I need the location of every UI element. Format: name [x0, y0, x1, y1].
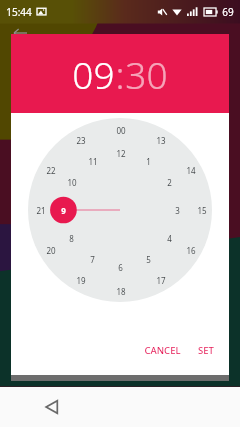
button[interactable]: 00	[112, 122, 129, 139]
staticText: SET	[198, 344, 214, 357]
staticText: 7	[90, 254, 95, 265]
button[interactable]: 09	[72, 49, 115, 99]
button[interactable]: 12	[112, 145, 129, 162]
button[interactable]: SET	[193, 341, 219, 360]
staticText: :	[115, 49, 125, 99]
staticText: 15:44	[6, 5, 32, 19]
staticText: 2	[167, 177, 172, 188]
button[interactable]: 7	[84, 251, 101, 268]
button[interactable]: 11	[84, 153, 101, 170]
button[interactable]: 22	[42, 162, 59, 179]
button[interactable]: 8	[63, 230, 80, 247]
staticText: 20	[46, 245, 56, 256]
button[interactable]: 14	[182, 162, 199, 179]
staticText: 9	[61, 205, 66, 216]
staticText: 21	[36, 205, 46, 216]
button[interactable]: 15	[193, 202, 210, 219]
staticText: 5	[146, 254, 151, 265]
button[interactable]: 6	[112, 259, 129, 276]
button[interactable]: CANCEL	[139, 341, 186, 360]
button[interactable]: 23	[72, 132, 89, 149]
staticText: 3	[175, 205, 180, 216]
button[interactable]: 18	[112, 283, 129, 300]
button[interactable]: 1	[140, 153, 157, 170]
staticText: 16	[186, 245, 196, 256]
staticText: 22	[46, 165, 56, 176]
staticText: 11	[88, 156, 98, 167]
staticText: 23	[76, 135, 86, 146]
button[interactable]: 10	[63, 174, 80, 191]
staticText: 17	[156, 275, 166, 286]
button[interactable]: 2	[161, 174, 178, 191]
button[interactable]: 17	[152, 272, 169, 289]
button[interactable]: Clock dial	[28, 118, 212, 302]
staticText: 1	[146, 156, 151, 167]
staticText: 15	[197, 205, 207, 216]
button[interactable]: 19	[72, 272, 89, 289]
button[interactable]: 20	[42, 242, 59, 259]
button[interactable]: 4	[161, 230, 178, 247]
button[interactable]: 30	[125, 49, 168, 99]
staticText: 12	[116, 148, 126, 159]
button[interactable]: 16	[182, 242, 199, 259]
staticText: 14	[186, 165, 196, 176]
staticText: 00	[116, 125, 126, 136]
staticText: 4	[167, 233, 172, 244]
button[interactable]: 13	[152, 132, 169, 149]
staticText: 19	[76, 275, 86, 286]
staticText: 18	[116, 286, 126, 297]
staticText: 69	[222, 5, 234, 19]
staticText: CANCEL	[144, 344, 181, 357]
button[interactable]: 3	[169, 202, 186, 219]
staticText: 6	[118, 262, 123, 273]
button[interactable]: 5	[140, 251, 157, 268]
staticText: 8	[69, 233, 74, 244]
button[interactable]: 21	[32, 202, 49, 219]
button[interactable]: 9	[55, 202, 72, 219]
staticText: 13	[156, 135, 166, 146]
staticText: 10	[67, 177, 77, 188]
button[interactable]: Back	[45, 400, 59, 414]
